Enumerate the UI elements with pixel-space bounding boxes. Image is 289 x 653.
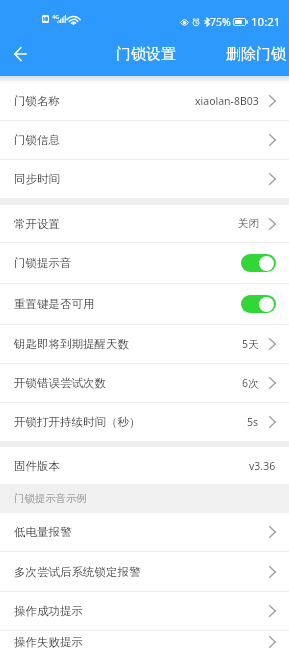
staticText: 常开设置 — [14, 217, 60, 231]
staticText: 5天 — [242, 337, 259, 351]
button[interactable]: 钥匙即将到期提醒天数 — [0, 325, 289, 363]
staticText: 钥匙即将到期提醒天数 — [14, 337, 129, 351]
staticText: 关闭 — [238, 217, 259, 230]
button[interactable]: 常开设置 — [0, 205, 289, 242]
button[interactable]: 多次尝试后系统锁定报警 — [0, 552, 289, 591]
staticText: 操作失败提示 — [14, 635, 83, 649]
button[interactable]: 操作成功提示 — [0, 592, 289, 630]
staticText: 固件版本 — [14, 459, 60, 473]
staticText: xiaolan-8B03 — [195, 94, 259, 108]
staticText: 6次 — [242, 376, 259, 390]
staticText: 门锁信息 — [14, 133, 60, 147]
staticText: 75% — [210, 15, 231, 29]
staticText: 低电量报警 — [14, 525, 72, 539]
button[interactable]: 操作失败提示 — [0, 631, 289, 653]
staticText: 重置键是否可用 — [14, 297, 95, 311]
staticText: v3.36 — [249, 459, 276, 473]
staticText: 同步时间 — [14, 172, 60, 186]
button[interactable]: 门锁信息 — [0, 121, 289, 159]
staticText: 多次尝试后系统锁定报警 — [14, 565, 141, 579]
staticText: 门锁名称 — [14, 94, 60, 108]
button[interactable]: 开锁打开持续时间（秒） — [0, 403, 289, 441]
staticText: 操作成功提示 — [14, 604, 83, 618]
staticText: 门锁提示音示例 — [14, 492, 87, 505]
button[interactable]: 门锁提示音 — [0, 243, 289, 283]
staticText: 门锁提示音 — [14, 256, 72, 270]
button[interactable]: 重置键是否可用 — [0, 284, 289, 324]
staticText: 删除门锁 — [226, 45, 286, 64]
button[interactable]: 固件版本 — [0, 447, 289, 484]
button[interactable]: 同步时间 — [0, 160, 289, 198]
button[interactable]: Back — [0, 31, 40, 76]
staticText: 5s — [247, 415, 259, 429]
staticText: 开锁打开持续时间（秒） — [14, 415, 141, 429]
staticText: 4G — [52, 13, 60, 20]
staticText: 门锁设置 — [116, 45, 176, 64]
button[interactable]: 低电量报警 — [0, 513, 289, 551]
staticText: 开锁错误尝试次数 — [14, 376, 106, 390]
button[interactable]: 删除门锁 — [226, 31, 289, 76]
button[interactable]: 门锁名称 — [0, 81, 289, 120]
staticText: 10:21 — [251, 14, 281, 30]
button[interactable]: 开锁错误尝试次数 — [0, 364, 289, 402]
